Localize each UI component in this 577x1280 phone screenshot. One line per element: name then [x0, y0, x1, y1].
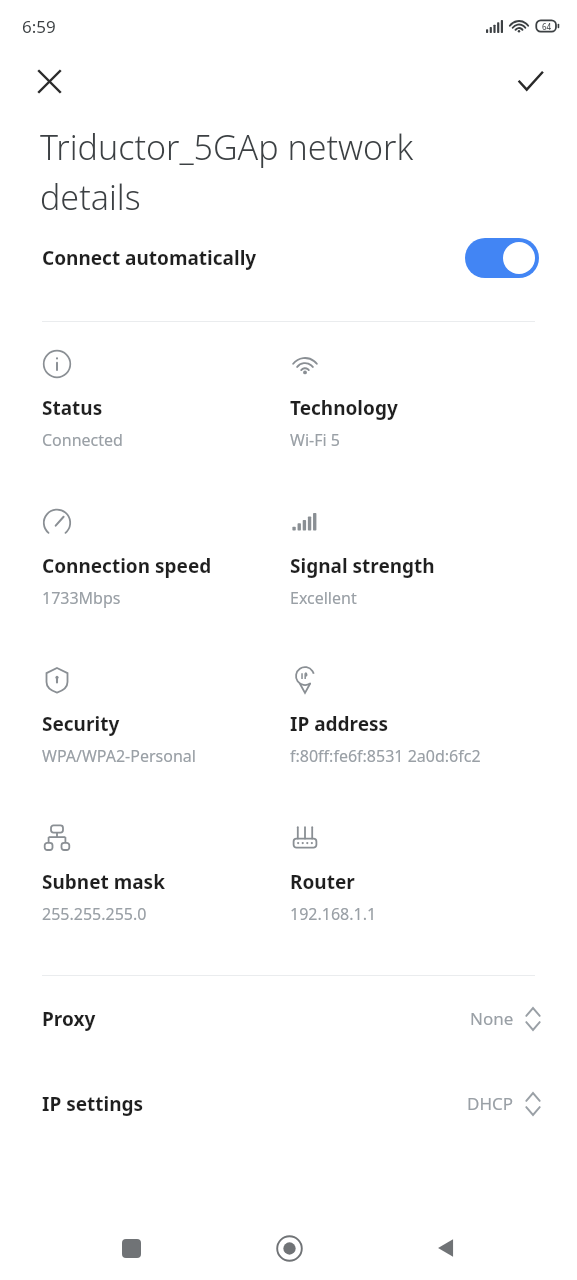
button[interactable]: Back	[419, 1221, 473, 1275]
staticText: Connect automatically	[42, 245, 257, 271]
staticText: Signal strength	[290, 553, 435, 579]
staticText: Security	[42, 711, 120, 737]
staticText: Wi-Fi 5	[290, 429, 340, 451]
button[interactable]: Recent apps	[104, 1221, 158, 1275]
button[interactable]: Save	[507, 58, 553, 104]
staticText: 1733Mbps	[42, 587, 121, 609]
staticText: Router	[290, 869, 355, 895]
button[interactable]: Router	[290, 807, 577, 925]
button[interactable]: IP address	[290, 649, 577, 767]
staticText: Excellent	[290, 587, 357, 609]
staticText: Proxy	[42, 1006, 96, 1032]
staticText: WPA/WPA2-Personal	[42, 745, 196, 767]
button[interactable]: Technology	[290, 333, 577, 451]
staticText: Status	[42, 395, 103, 421]
staticText: 6:59	[22, 15, 56, 38]
button[interactable]: Subnet mask	[42, 807, 288, 925]
staticText: DHCP	[467, 1092, 514, 1115]
button[interactable]: Proxy	[0, 976, 577, 1061]
button[interactable]: Connection speed	[42, 491, 288, 609]
staticText: None	[470, 1007, 514, 1030]
staticText: Connected	[42, 429, 123, 451]
button[interactable]: Signal strength	[290, 491, 577, 609]
staticText: IP address	[290, 711, 389, 737]
staticText: Connection speed	[42, 553, 212, 579]
staticText: Triductor_5GAp network	[40, 124, 414, 170]
staticText: f:80ff:fe6f:8531 2a0d:6fc2	[290, 745, 481, 767]
staticText: 255.255.255.0	[42, 903, 147, 925]
staticText: 192.168.1.1	[290, 903, 377, 925]
staticText: IP settings	[42, 1091, 144, 1117]
button[interactable]: Connect automatically	[0, 220, 577, 296]
staticText: details	[40, 174, 141, 220]
button[interactable]: Cancel	[26, 58, 72, 104]
button[interactable]: Home	[262, 1221, 316, 1275]
button[interactable]: Security	[42, 649, 288, 767]
staticText: Subnet mask	[42, 869, 165, 895]
button[interactable]: Status	[42, 333, 288, 451]
staticText: Technology	[290, 395, 398, 421]
button[interactable]: IP settings	[0, 1061, 577, 1146]
staticText: 64	[542, 21, 552, 32]
